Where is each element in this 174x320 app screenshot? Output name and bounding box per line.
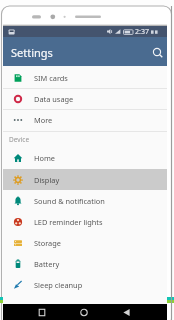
button[interactable]: Home	[76, 304, 92, 320]
staticText: Battery	[34, 259, 60, 269]
staticText: Sleep cleanup	[34, 280, 83, 290]
button[interactable]: SIM cards	[3, 67, 167, 88]
button[interactable]: Display	[3, 169, 167, 190]
button[interactable]: Back	[119, 304, 135, 320]
staticText: Storage	[34, 238, 61, 248]
staticText: LED reminder lights	[34, 217, 103, 227]
button[interactable]: Home	[3, 147, 167, 168]
staticText: Home	[34, 153, 56, 163]
staticText: More	[34, 115, 53, 125]
button[interactable]: Search	[149, 44, 167, 62]
staticText: SIM cards	[34, 73, 68, 83]
button[interactable]: Storage	[3, 232, 167, 253]
staticText: 2:37	[135, 27, 149, 37]
staticText: Data usage	[34, 94, 74, 104]
staticText: Display	[34, 175, 60, 185]
button[interactable]: Data usage	[3, 88, 167, 109]
staticText: Settings	[11, 45, 53, 60]
button[interactable]: Sleep cleanup	[3, 274, 167, 295]
button[interactable]: Battery	[3, 253, 167, 274]
button[interactable]: More	[3, 109, 167, 130]
button[interactable]: Recents	[34, 304, 50, 320]
staticText: Sound & notification	[34, 196, 105, 206]
button[interactable]: Sound & notification	[3, 190, 167, 211]
staticText: Device	[9, 135, 30, 144]
button[interactable]: LED reminder lights	[3, 211, 167, 232]
